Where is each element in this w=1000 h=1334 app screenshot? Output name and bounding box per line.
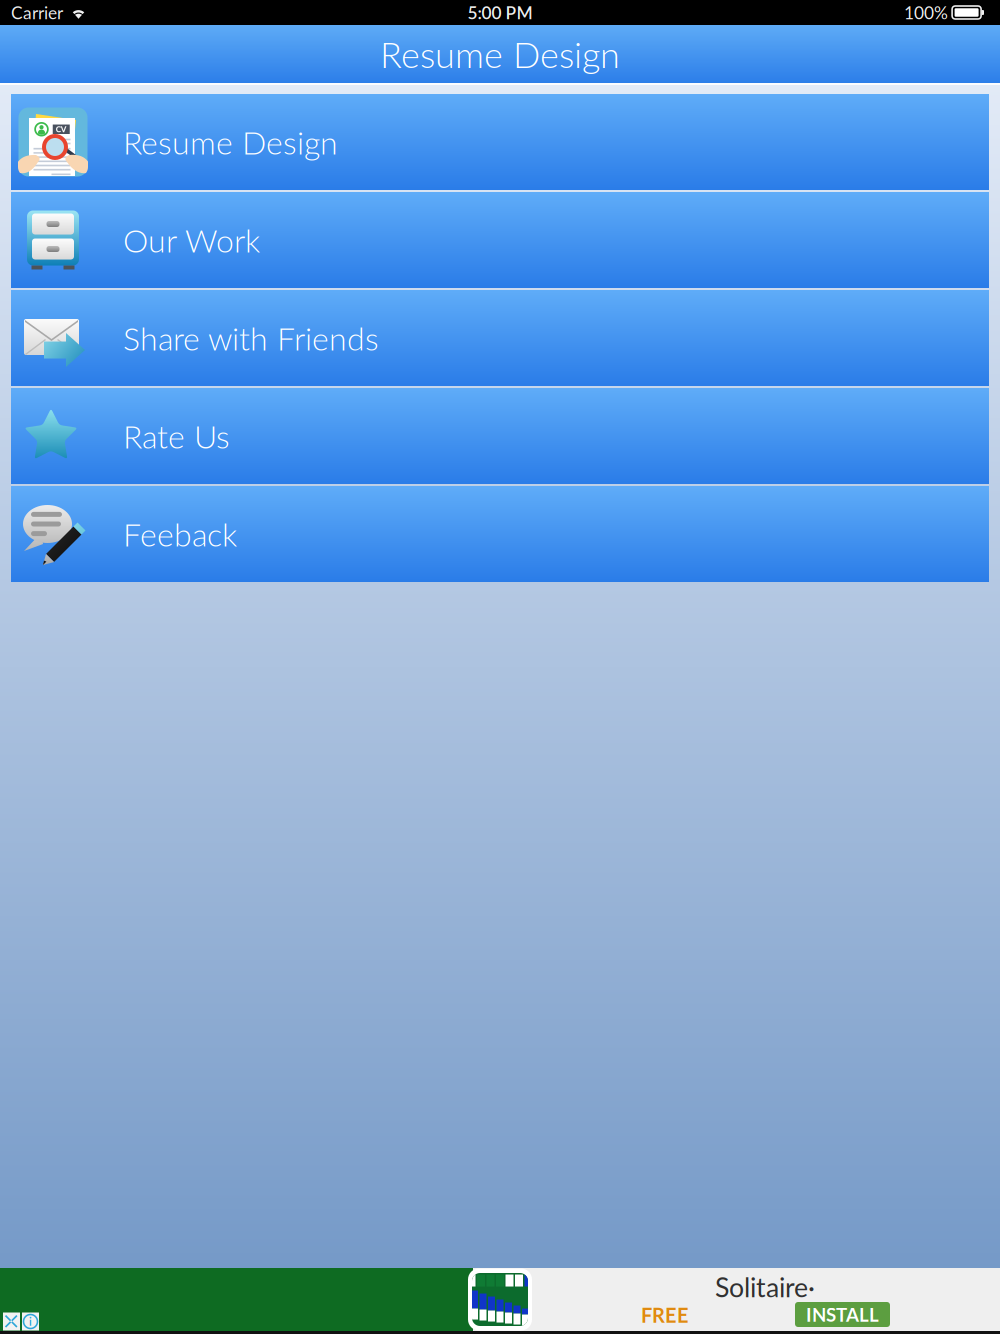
- staticText: Carrier: [11, 2, 63, 23]
- button[interactable]: Feeback: [11, 486, 989, 582]
- staticText: INSTALL: [806, 1303, 879, 1326]
- staticText: FREE: [641, 1303, 689, 1327]
- button[interactable]: Ad information: [22, 1312, 39, 1330]
- staticText: 5:00 PM: [467, 2, 532, 23]
- staticText: Solitaire·: [715, 1271, 815, 1303]
- button[interactable]: INSTALL: [795, 1302, 890, 1327]
- button[interactable]: Share with Friends: [11, 290, 989, 386]
- button[interactable]: CV: [11, 94, 989, 190]
- staticText: Resume Design: [123, 123, 338, 161]
- staticText: CV: [56, 124, 67, 134]
- button[interactable]: Close ad: [3, 1312, 20, 1330]
- staticText: 100%: [904, 2, 948, 23]
- staticText: Feeback: [123, 515, 237, 553]
- staticText: Share with Friends: [123, 319, 379, 357]
- staticText: i: [29, 1315, 32, 1328]
- staticText: Our Work: [123, 221, 260, 259]
- staticText: Rate Us: [123, 417, 230, 455]
- staticText: Resume Design: [380, 32, 620, 76]
- button[interactable]: Rate Us: [11, 388, 989, 484]
- button[interactable]: Our Work: [11, 192, 989, 288]
